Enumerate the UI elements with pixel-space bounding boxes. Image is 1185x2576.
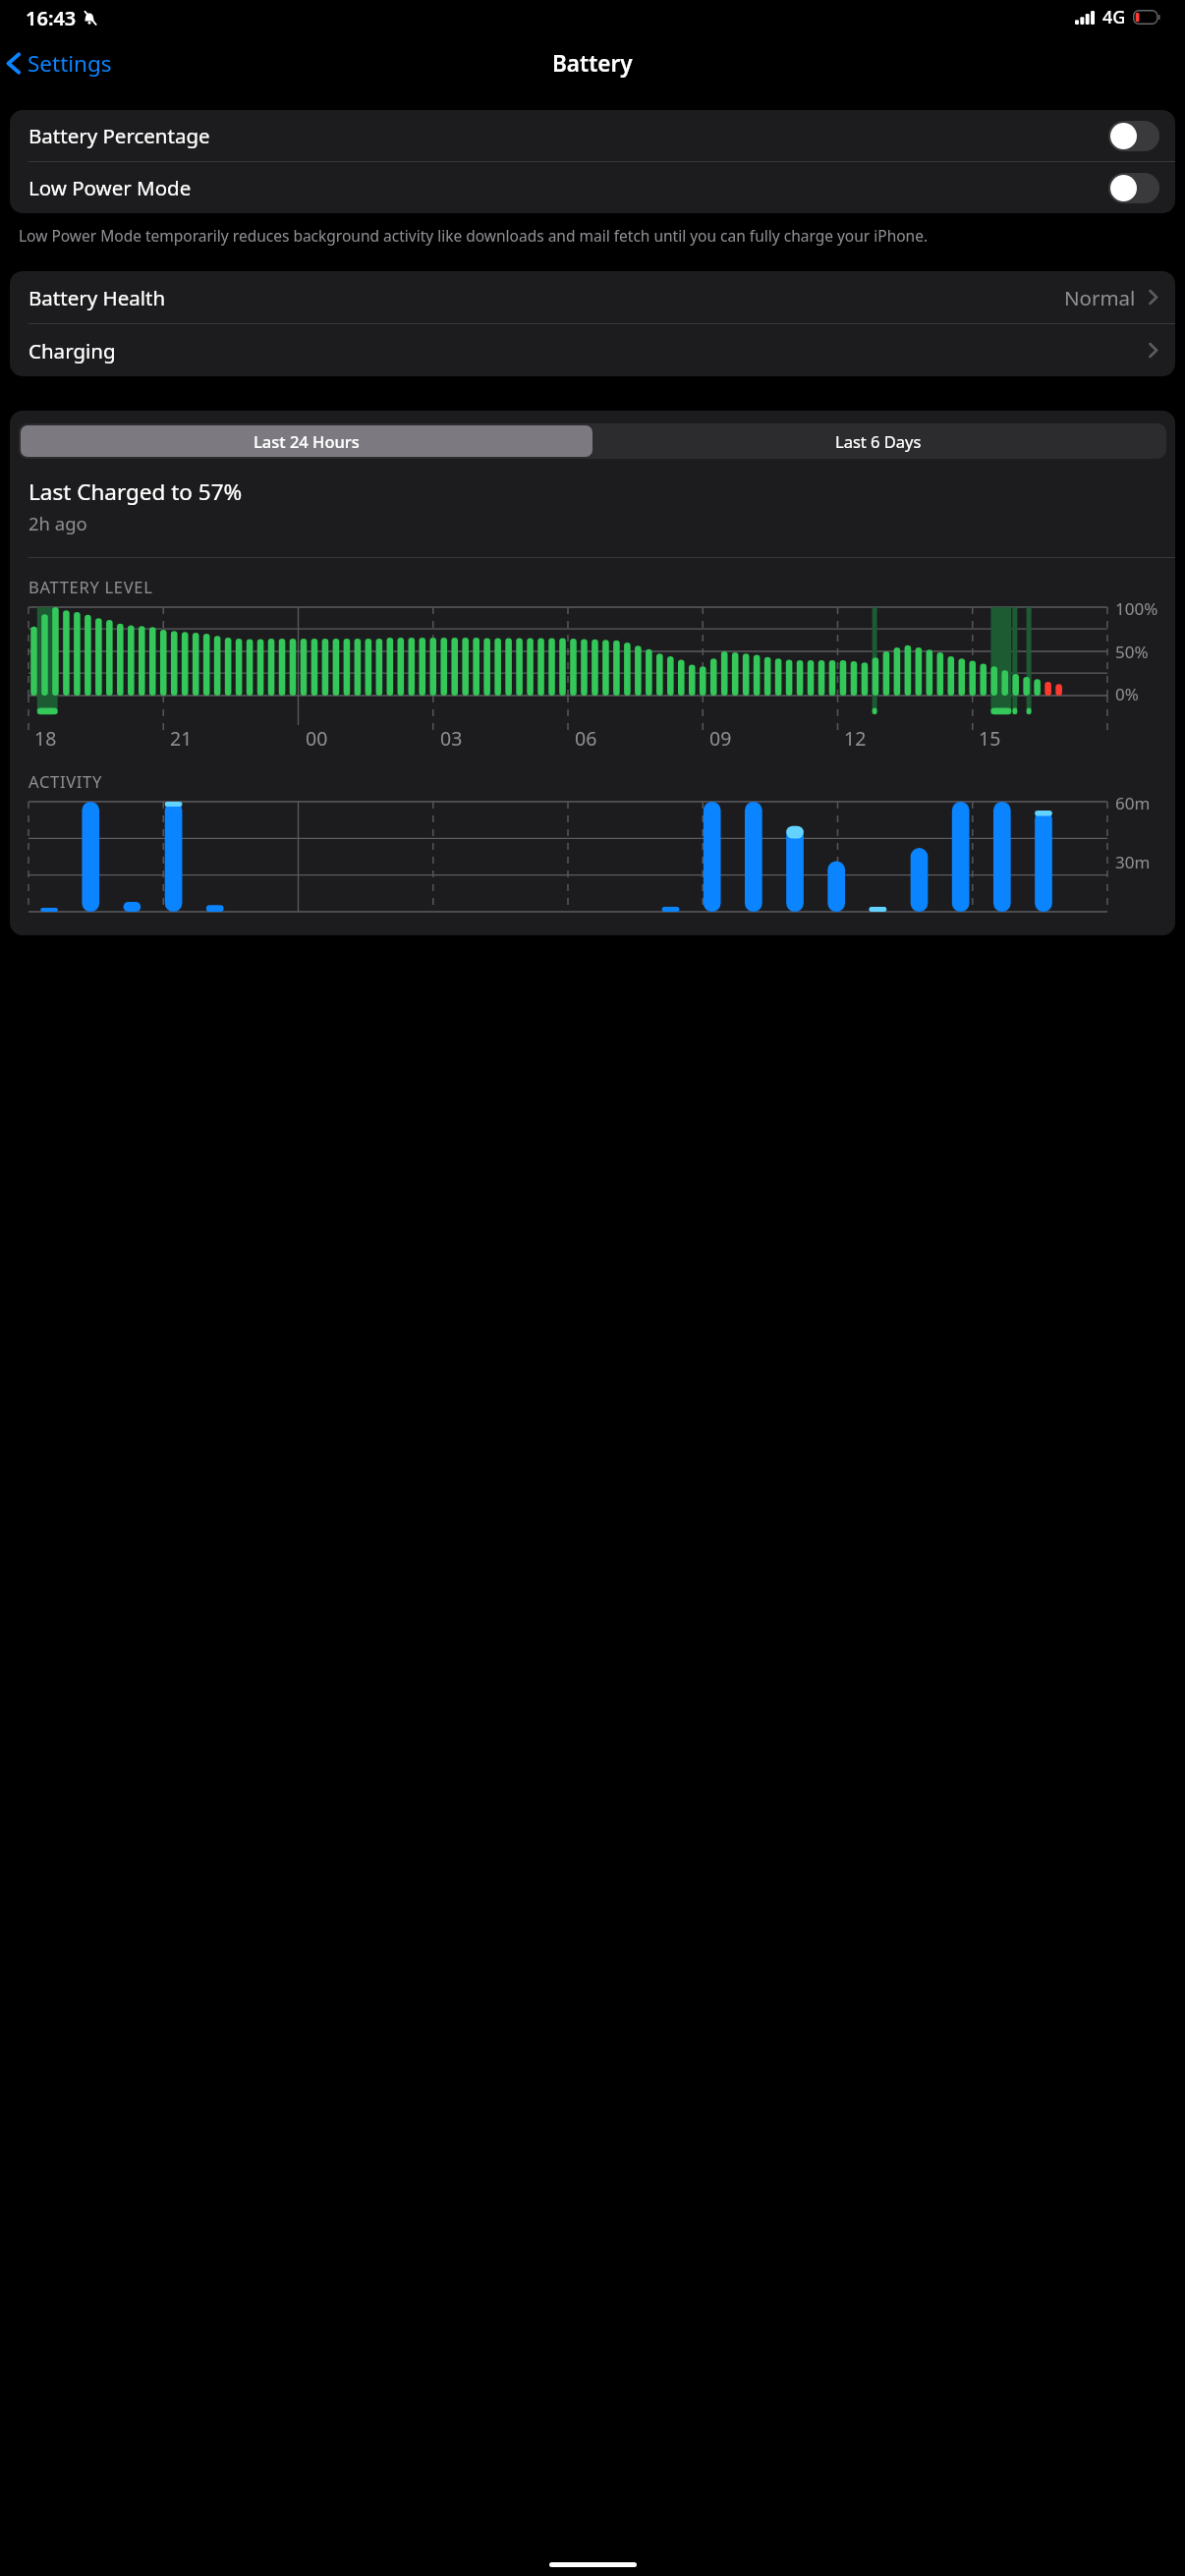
button[interactable]: Battery Percentage [10,110,1175,161]
staticText: Battery [552,48,633,79]
staticText: 100% [1115,597,1158,620]
button[interactable]: Charging [10,324,1175,376]
staticText: Last Charged to 57% [28,476,243,507]
staticText: Last 6 Days [835,430,922,452]
button[interactable]: Last 6 Days [592,425,1164,457]
button[interactable]: Last 24 Hours [21,425,592,457]
staticText: 4G [1102,5,1126,29]
staticText: 16:43 [26,5,77,31]
staticText: Low Power Mode temporarily reduces backg… [19,225,1166,246]
staticText: Charging [28,337,116,364]
staticText: Last 24 Hours [254,430,360,452]
staticText: Battery Health [28,284,166,311]
button[interactable]: Low Power Mode [10,162,1175,213]
staticText: Battery Percentage [28,122,210,149]
staticText: 2h ago [28,511,87,535]
button[interactable]: Battery Percentage, off [1108,121,1159,151]
button[interactable]: Battery Health [10,271,1175,323]
staticText: 03 [440,725,463,752]
staticText: 15 [979,725,1001,752]
staticText: 12 [844,725,867,752]
staticText: Settings [28,48,112,79]
staticText: 30m [1115,851,1151,873]
button[interactable]: Low Power Mode, off [1108,173,1159,203]
staticText: 60m [1115,792,1151,814]
button[interactable]: Settings [0,40,122,86]
staticText: BATTERY LEVEL [28,576,153,597]
staticText: 0% [1115,683,1139,705]
staticText: 09 [709,725,732,752]
staticText: 00 [306,725,328,752]
staticText: Normal [1064,284,1136,311]
staticText: ACTIVITY [28,770,103,792]
staticText: 21 [170,725,193,752]
staticText: 50% [1115,641,1149,663]
staticText: Low Power Mode [28,174,192,201]
staticText: 18 [34,725,57,752]
staticText: 06 [575,725,597,752]
